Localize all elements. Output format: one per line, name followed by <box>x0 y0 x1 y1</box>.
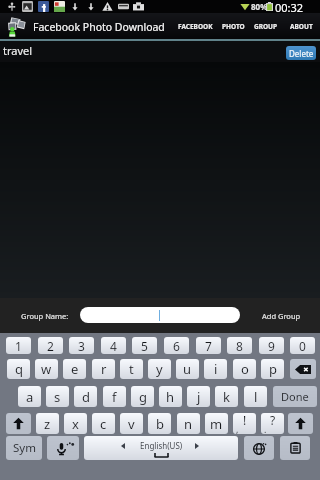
button[interactable]: 4 <box>101 337 126 354</box>
staticText: t <box>129 360 134 378</box>
staticText: 2 <box>47 338 54 354</box>
staticText: k <box>223 388 230 406</box>
staticText: . <box>264 423 267 434</box>
staticText: FACEBOOK <box>178 22 213 31</box>
button[interactable]: PHOTO <box>219 13 248 39</box>
button[interactable]: x <box>64 413 87 434</box>
button[interactable]: 0 <box>290 337 315 354</box>
button[interactable]: w <box>35 359 58 379</box>
staticText: o <box>241 360 249 378</box>
button[interactable]: Shift <box>288 413 313 434</box>
staticText: ! <box>243 413 247 428</box>
staticText: Delete <box>289 48 314 59</box>
button[interactable]: d <box>74 386 97 407</box>
button[interactable]: Change language <box>244 436 274 460</box>
button[interactable]: n <box>177 413 200 434</box>
staticText: g <box>139 388 147 406</box>
button[interactable]: i <box>204 359 227 379</box>
button[interactable]: 3 <box>69 337 94 354</box>
button[interactable]: g <box>131 386 154 407</box>
staticText: Facebook Photo Download <box>33 20 165 34</box>
staticText: Done <box>281 389 309 404</box>
button[interactable]: f <box>103 386 126 407</box>
button[interactable]: c <box>92 413 115 434</box>
staticText: n <box>184 415 193 433</box>
staticText: 8 <box>236 338 243 354</box>
staticText: m <box>210 415 223 433</box>
button[interactable]: v <box>120 413 143 434</box>
staticText: f <box>112 388 117 406</box>
staticText: 0 <box>299 338 306 354</box>
staticText: x <box>72 415 79 433</box>
button[interactable]: o <box>233 359 256 379</box>
button[interactable]: ABOUT <box>287 13 316 39</box>
staticText: 4 <box>110 338 117 354</box>
staticText: GROUP <box>254 22 278 31</box>
button[interactable]: y <box>148 359 171 379</box>
button[interactable]: h <box>159 386 182 407</box>
button[interactable]: FACEBOOK <box>175 13 216 39</box>
staticText: 5 <box>141 338 148 354</box>
button[interactable]: Delete <box>286 46 316 60</box>
button[interactable]: 8 <box>227 337 252 354</box>
button[interactable]: u <box>176 359 199 379</box>
staticText: c <box>100 415 107 433</box>
staticText: ABOUT <box>290 22 313 31</box>
button[interactable]: r <box>92 359 115 379</box>
button[interactable] <box>80 307 240 323</box>
staticText: j <box>197 388 201 406</box>
staticText: travel <box>3 43 33 58</box>
button[interactable]: English(US) <box>84 436 238 460</box>
staticText: v <box>128 415 135 433</box>
staticText: 7 <box>205 338 212 354</box>
button[interactable]: Voice input <box>47 436 79 460</box>
staticText: q <box>15 360 23 378</box>
staticText: 1 <box>15 338 22 354</box>
staticText: h <box>166 388 175 406</box>
button[interactable]: q <box>7 359 30 379</box>
staticText: i <box>214 360 218 378</box>
staticText: e <box>71 360 79 378</box>
button[interactable]: a <box>18 386 41 407</box>
button[interactable]: 6 <box>164 337 189 354</box>
button[interactable]: m <box>205 413 228 434</box>
button[interactable]: 5 <box>132 337 157 354</box>
button[interactable]: l <box>244 386 267 407</box>
button[interactable]: t <box>120 359 143 379</box>
button[interactable]: 1 <box>6 337 31 354</box>
button[interactable]: ! <box>233 413 256 434</box>
staticText: 6 <box>173 338 180 354</box>
button[interactable]: GROUP <box>251 13 281 39</box>
staticText: z <box>44 415 51 433</box>
staticText: Add Group <box>262 311 301 321</box>
button[interactable]: Backspace <box>290 359 316 379</box>
button[interactable]: k <box>215 386 238 407</box>
button[interactable]: Clipboard <box>280 436 310 460</box>
staticText: , <box>236 423 239 434</box>
button[interactable]: Add Group <box>258 306 305 326</box>
button[interactable]: 2 <box>38 337 63 354</box>
button[interactable]: Done <box>273 386 317 407</box>
button[interactable]: j <box>187 386 210 407</box>
staticText: r <box>101 360 107 378</box>
staticText: d <box>82 388 90 406</box>
staticText: p <box>269 360 277 378</box>
button[interactable]: Sym <box>6 436 42 460</box>
button[interactable]: Shift <box>6 413 31 434</box>
staticText: u <box>183 360 192 378</box>
button[interactable]: s <box>46 386 69 407</box>
button[interactable]: p <box>261 359 284 379</box>
button[interactable]: 9 <box>259 337 284 354</box>
staticText: 00:32 <box>275 0 304 13</box>
staticText: 3 <box>78 338 85 354</box>
staticText: s <box>54 388 61 406</box>
staticText: ? <box>270 413 276 428</box>
staticText: l <box>254 388 258 406</box>
staticText: 80% <box>251 1 268 12</box>
button[interactable]: e <box>63 359 86 379</box>
staticText: Sym <box>13 440 36 456</box>
button[interactable]: ? <box>261 413 284 434</box>
button[interactable]: b <box>148 413 171 434</box>
button[interactable]: 7 <box>196 337 221 354</box>
button[interactable]: z <box>36 413 59 434</box>
